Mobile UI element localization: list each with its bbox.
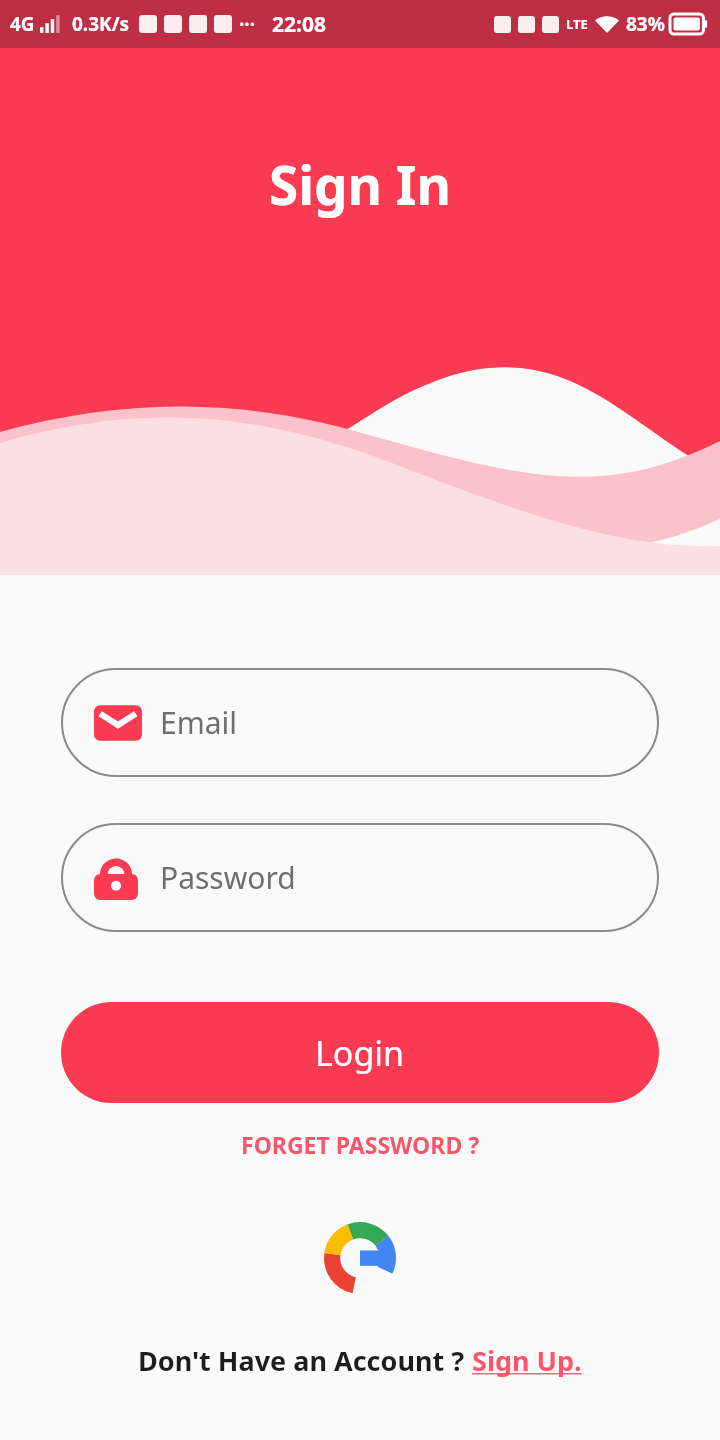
staticText: FORGET PASSWORD ?: [241, 1129, 480, 1160]
staticText: 83%: [626, 11, 665, 37]
button[interactable]: Sign in with Google: [320, 1218, 400, 1298]
button[interactable]: Login: [61, 1002, 659, 1103]
staticText: Don't Have an Account ?: [138, 1342, 472, 1379]
staticText: Email: [160, 702, 238, 743]
staticText: Password: [160, 857, 296, 898]
button[interactable]: Email: [61, 668, 659, 777]
button[interactable]: Sign Up.: [472, 1342, 582, 1379]
staticText: Sign Up.: [472, 1342, 582, 1379]
button[interactable]: Password: [61, 823, 659, 932]
staticText: Login: [315, 1030, 405, 1076]
staticText: 4G: [10, 11, 35, 37]
staticText: 22:08: [272, 10, 326, 39]
button[interactable]: FORGET PASSWORD ?: [61, 1129, 659, 1160]
staticText: LTE: [566, 15, 588, 33]
staticText: 0.3K/s: [72, 11, 130, 37]
staticText: Sign In: [269, 148, 451, 220]
staticText: ···: [239, 11, 256, 37]
